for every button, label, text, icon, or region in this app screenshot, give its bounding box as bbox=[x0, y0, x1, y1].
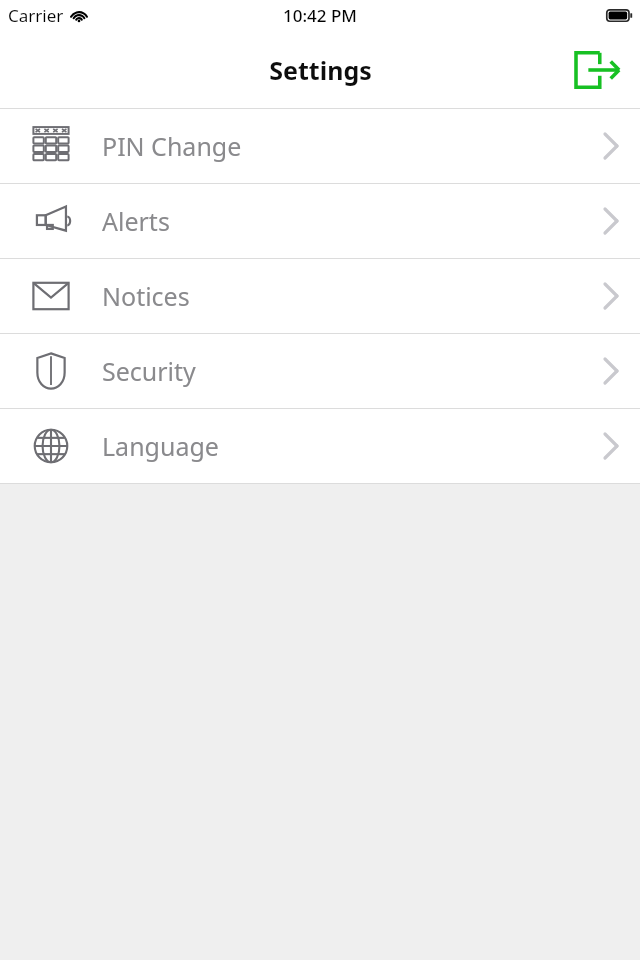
staticText: Settings bbox=[269, 53, 372, 87]
staticText: Carrier bbox=[8, 4, 64, 27]
button[interactable]: Notices bbox=[0, 259, 640, 333]
button[interactable]: Security bbox=[0, 334, 640, 408]
button[interactable]: Alerts bbox=[0, 184, 640, 258]
staticText: Alerts bbox=[102, 204, 170, 238]
staticText: Security bbox=[102, 354, 196, 388]
button[interactable]: Language bbox=[0, 409, 640, 483]
staticText: PIN Change bbox=[102, 129, 242, 163]
staticText: Language bbox=[102, 429, 219, 463]
button[interactable]: PIN Change bbox=[0, 109, 640, 183]
button[interactable]: Log out bbox=[572, 44, 624, 96]
staticText: 10:42 PM bbox=[283, 4, 357, 27]
staticText: Notices bbox=[102, 279, 190, 313]
